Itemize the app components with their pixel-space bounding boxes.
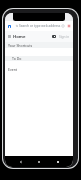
button[interactable]: To Do <box>5 56 73 61</box>
staticText: Your Shortcuts <box>8 43 33 48</box>
other: Search <box>16 25 18 27</box>
button[interactable]: Event <box>5 67 73 72</box>
button[interactable]: App menu <box>8 25 11 28</box>
button[interactable]: Your Shortcuts <box>5 42 73 48</box>
staticText: Event <box>8 67 18 72</box>
button[interactable]: Recents <box>55 159 61 165</box>
button[interactable]: Back <box>18 159 24 165</box>
staticText: To Do <box>12 56 22 61</box>
button[interactable]: Play <box>52 35 56 38</box>
button[interactable]: Tabs <box>61 24 65 28</box>
staticText: Search or type web address <box>19 24 61 28</box>
staticText: Home <box>13 34 26 40</box>
staticText: Sign in <box>59 35 70 39</box>
button[interactable]: Profile <box>67 24 71 28</box>
button[interactable]: Home <box>36 159 42 165</box>
